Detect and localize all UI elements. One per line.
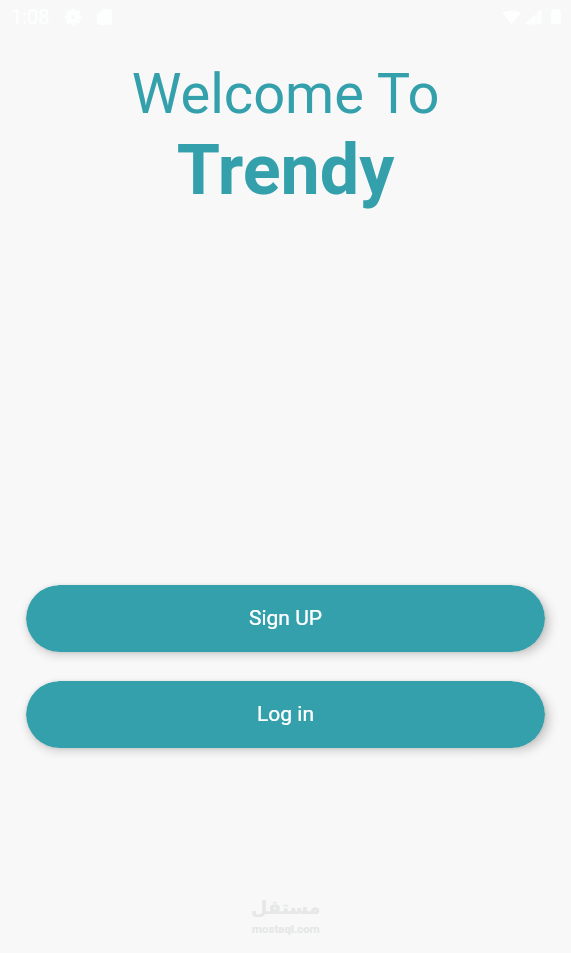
staticText: Sign UP: [249, 606, 323, 631]
staticText: مستقل: [251, 896, 321, 918]
staticText: Welcome To: [0, 61, 571, 127]
button[interactable]: Log in: [26, 681, 545, 748]
staticText: Trendy: [0, 129, 571, 211]
button[interactable]: Sign UP: [26, 585, 545, 652]
staticText: mostaql.com: [252, 922, 320, 935]
staticText: Log in: [257, 702, 314, 727]
